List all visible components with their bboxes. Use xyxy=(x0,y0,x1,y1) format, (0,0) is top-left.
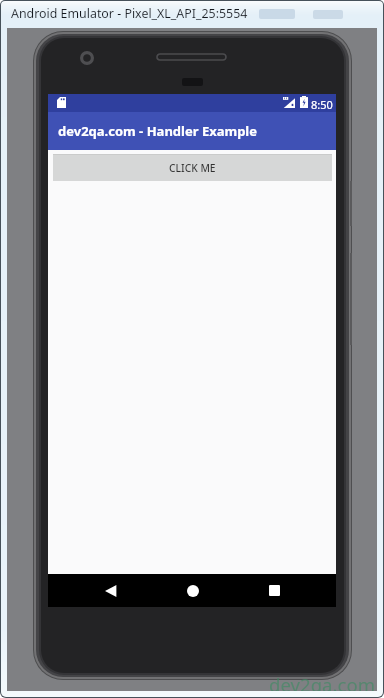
button[interactable]: Home xyxy=(178,574,207,607)
button[interactable]: Recents xyxy=(260,574,289,607)
staticText: 8:50 xyxy=(311,97,333,112)
staticText: dev2qa.com xyxy=(269,672,376,691)
button[interactable]: Back xyxy=(96,574,125,607)
staticText: CLICK ME xyxy=(169,161,216,175)
button[interactable]: CLICK ME xyxy=(53,154,332,181)
staticText: dev2qa.com - Handler Example xyxy=(58,122,257,140)
staticText: Android Emulator - Pixel_XL_API_25:5554 xyxy=(11,5,248,22)
